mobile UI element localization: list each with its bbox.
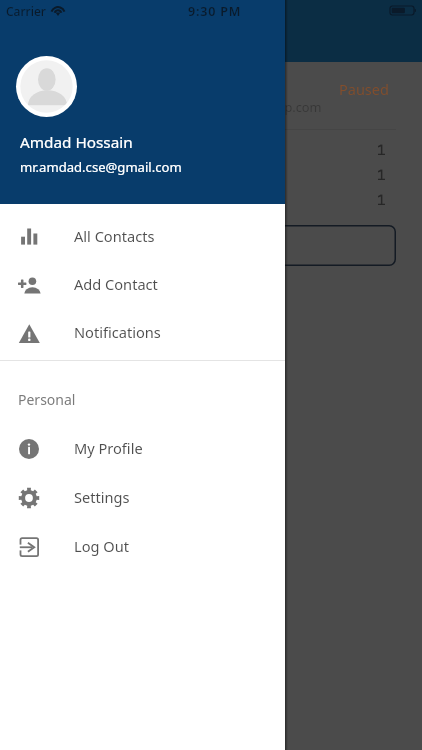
button[interactable]: All Contacts <box>0 213 285 261</box>
staticText: 9:30 PM <box>188 3 242 20</box>
staticText: Paused <box>339 79 389 99</box>
staticText: Amdad Hossain <box>20 132 133 153</box>
staticText: Personal <box>18 390 76 409</box>
button[interactable]: Settings <box>0 473 285 522</box>
staticText: Add Contact <box>74 274 158 294</box>
staticText: Settings <box>74 487 130 507</box>
staticText: My Profile <box>74 438 143 458</box>
staticText: All Contacts <box>74 226 155 246</box>
staticText: mr.amdad.cse@gmail.com <box>20 158 182 176</box>
button[interactable]: Add Contact <box>0 261 285 309</box>
staticText: Notifications <box>74 322 161 342</box>
button[interactable]: My Profile <box>0 424 285 473</box>
button[interactable]: Notifications <box>0 309 285 357</box>
staticText: Carrier <box>6 3 46 19</box>
staticText: hello@mobileapp.com <box>187 98 322 115</box>
staticText: Log Out <box>74 536 129 556</box>
button[interactable]: Log Out <box>0 522 285 571</box>
button[interactable]: Close navigation drawer <box>285 0 422 750</box>
